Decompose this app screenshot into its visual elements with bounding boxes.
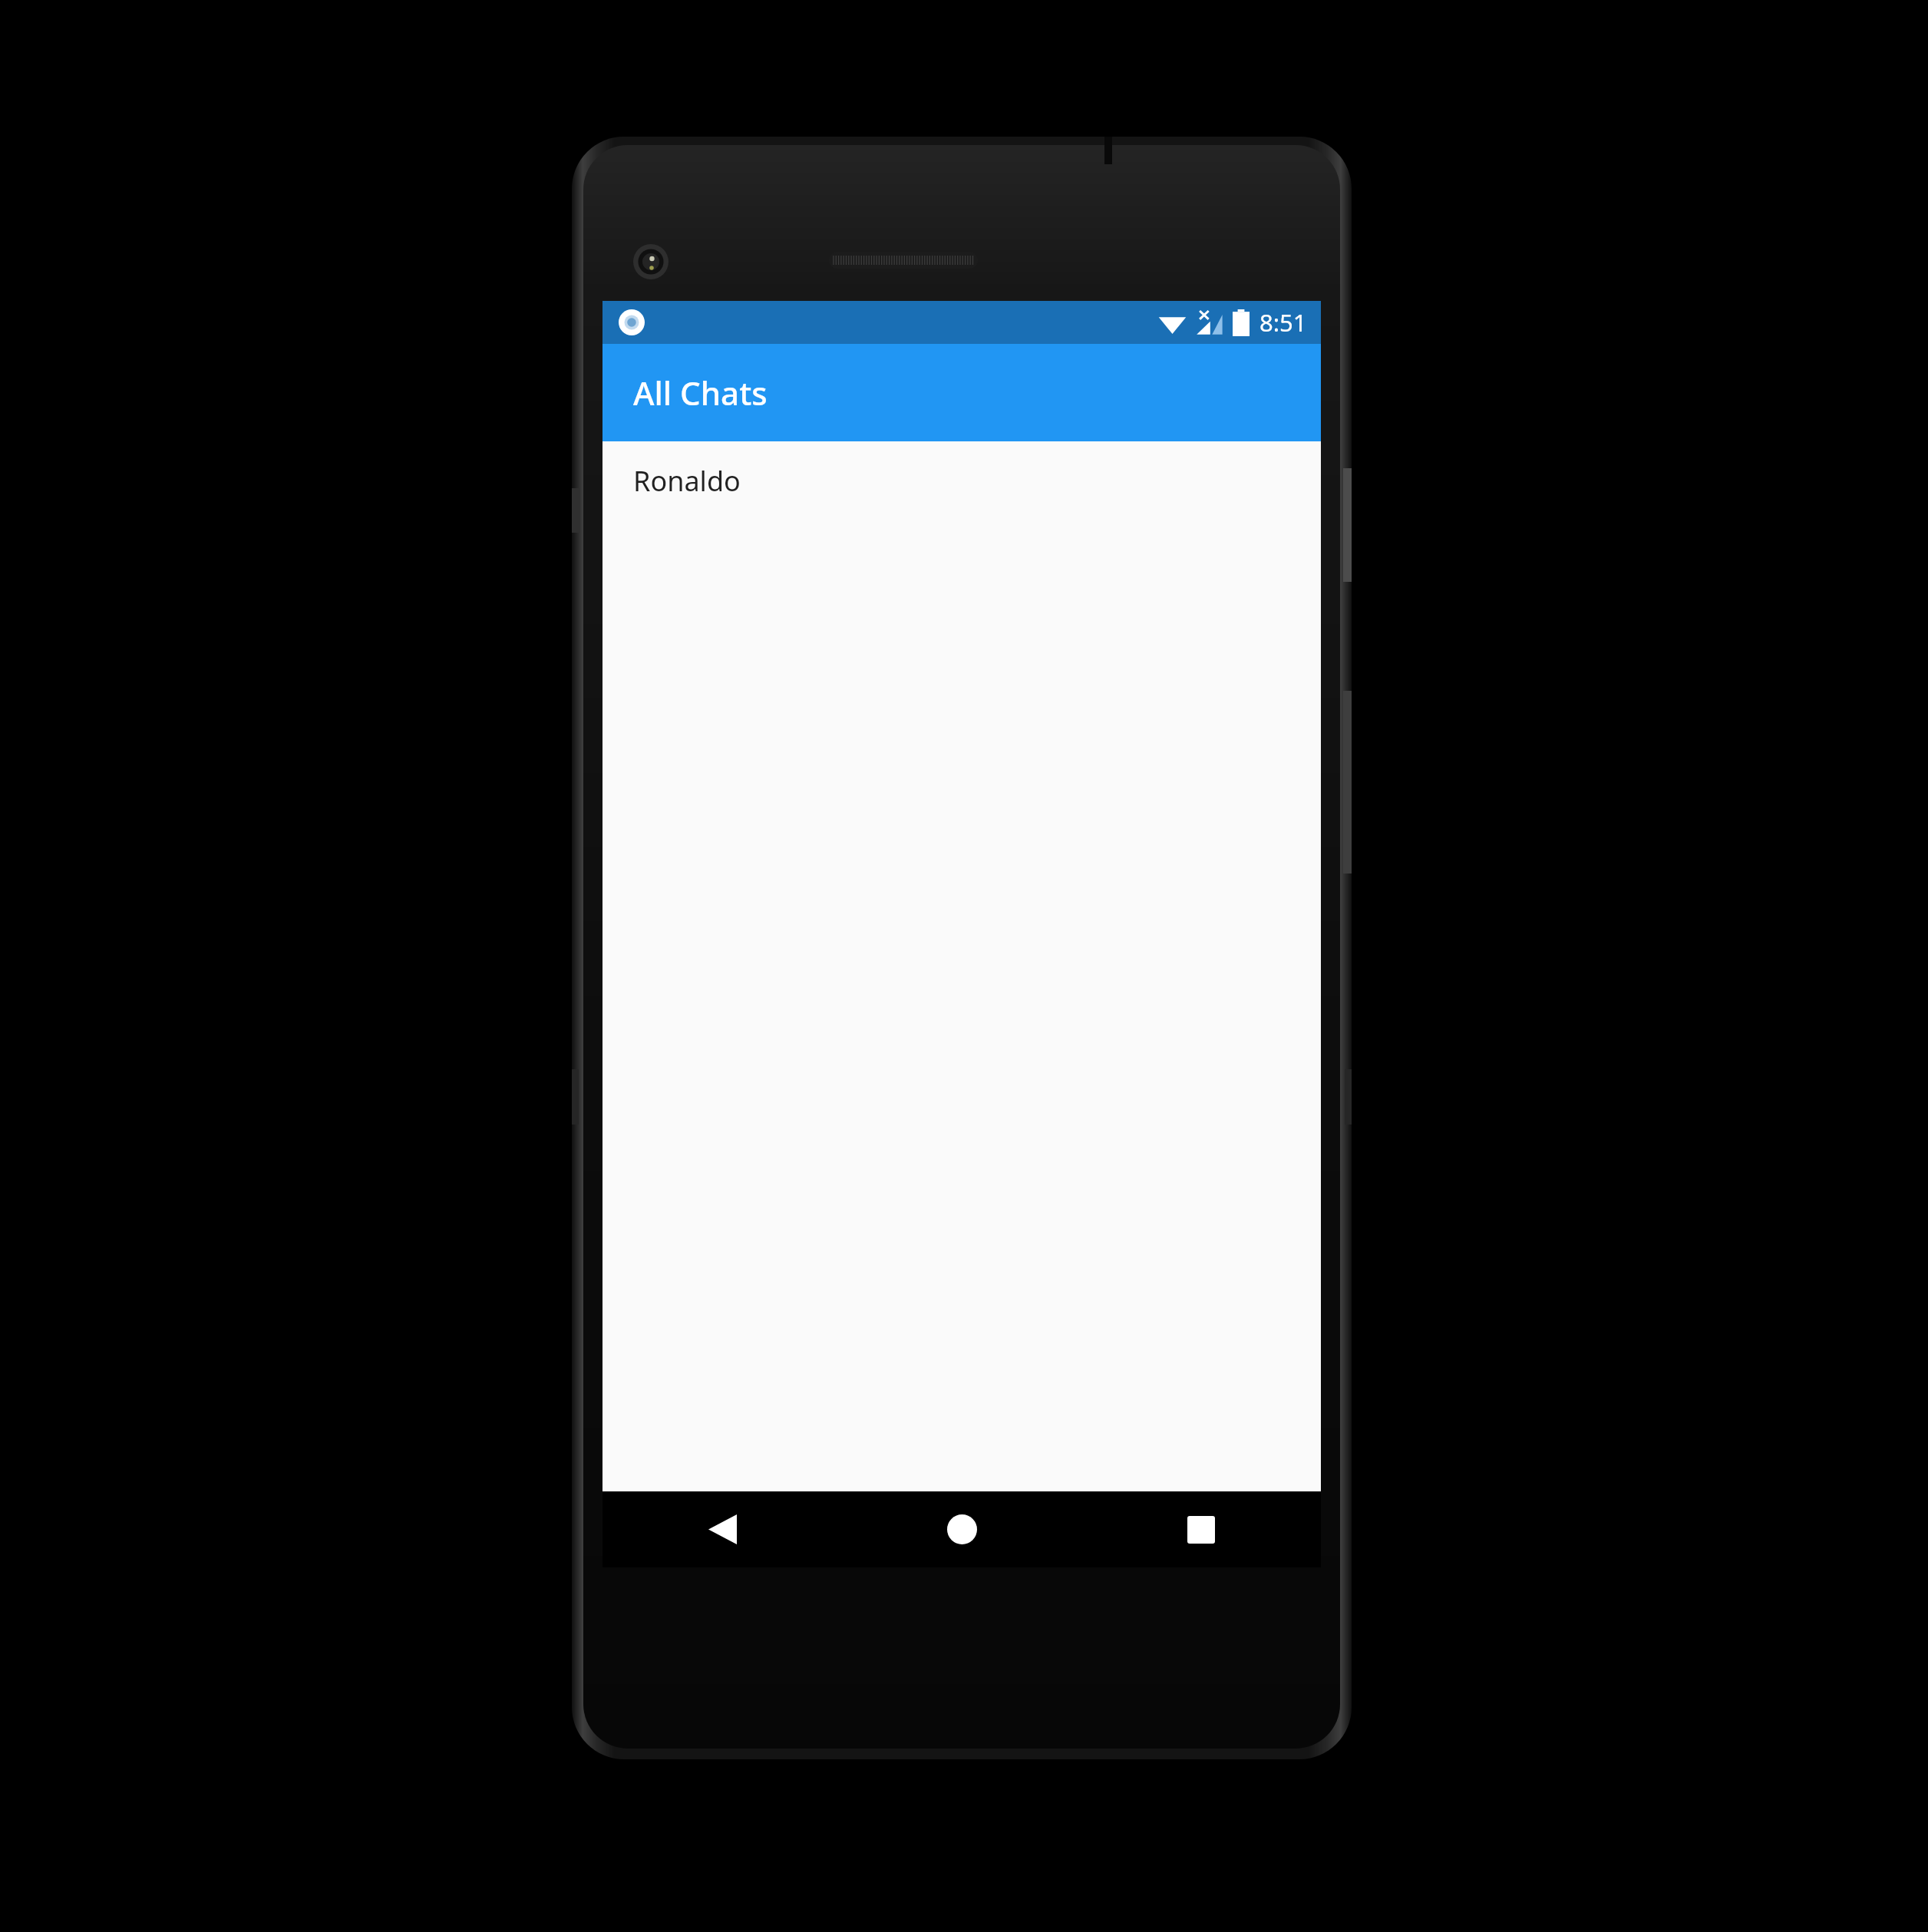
staticText: 8:51 <box>1259 306 1307 339</box>
button[interactable]: Recent apps <box>1081 1491 1321 1567</box>
button[interactable]: Ronaldo <box>602 441 1321 520</box>
button[interactable]: Back <box>602 1491 842 1567</box>
staticText: Ronaldo <box>633 462 741 500</box>
button[interactable]: Home <box>842 1491 1081 1567</box>
staticText: All Chats <box>633 371 768 414</box>
